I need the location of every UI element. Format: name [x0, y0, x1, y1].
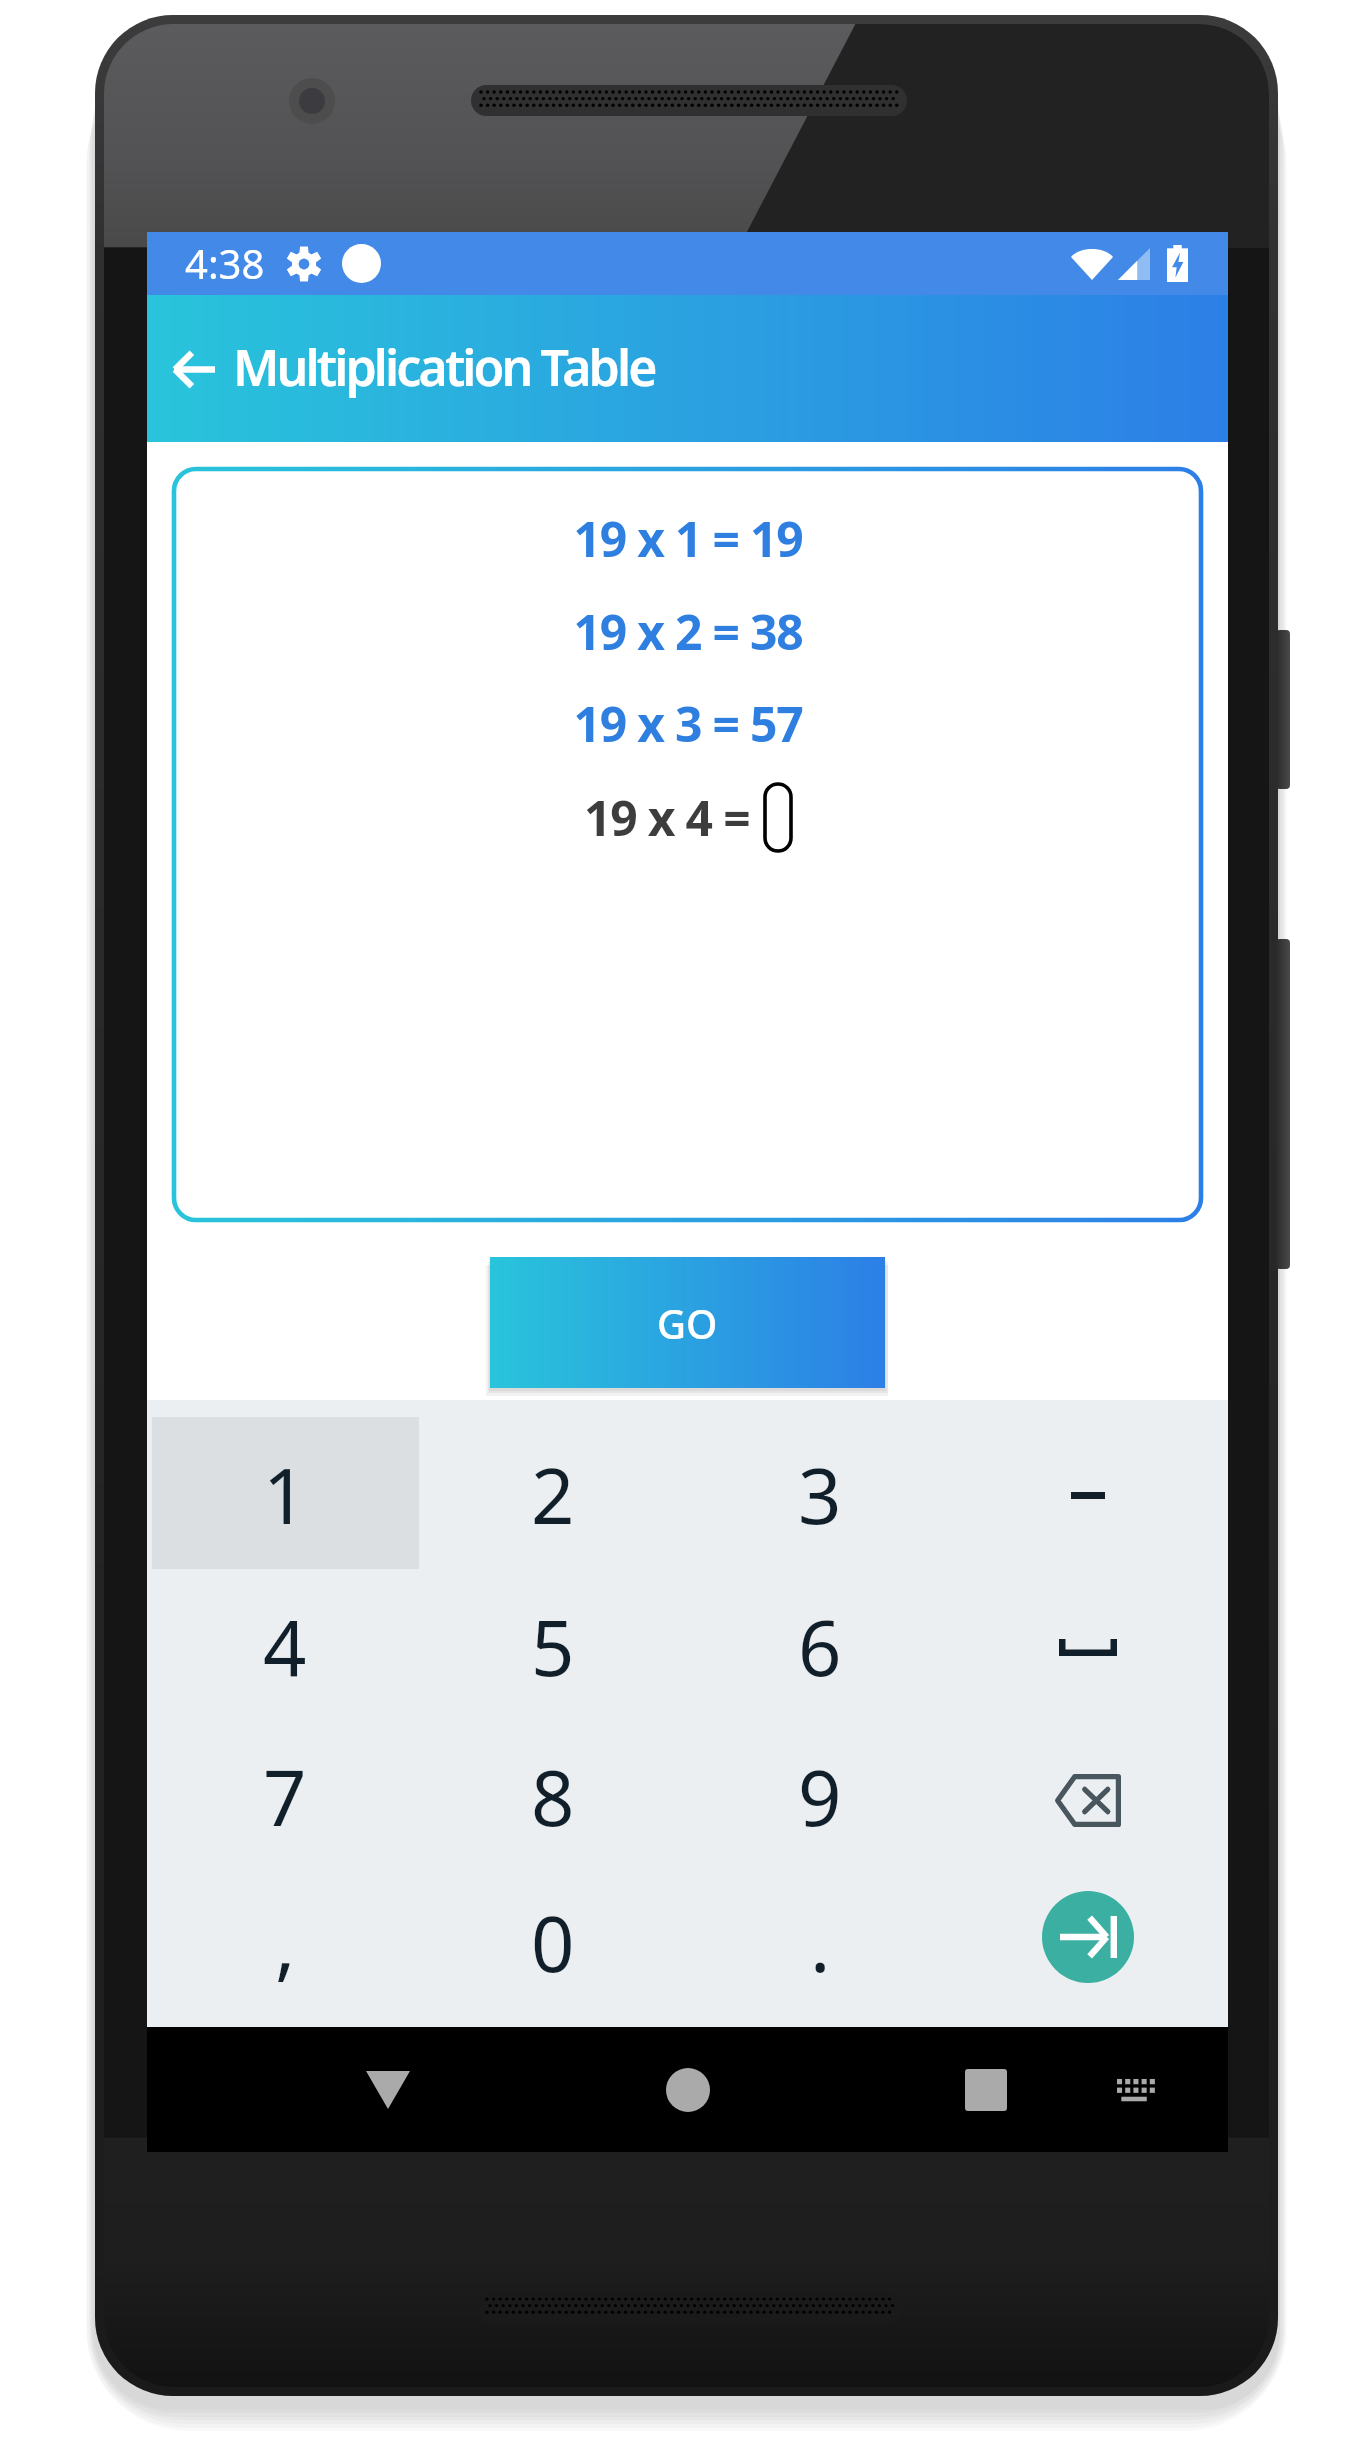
staticText: 2 [531, 1443, 575, 1547]
staticText: 7 [263, 1745, 307, 1849]
staticText: 19 x 3 = 57 [573, 691, 803, 756]
staticText: 4:38 [185, 236, 265, 290]
staticText: 6 [798, 1595, 842, 1699]
button[interactable]: Recents [931, 2027, 1041, 2152]
button[interactable]: Backspace [955, 1724, 1221, 1876]
staticText: Multiplication Table [233, 333, 655, 401]
button[interactable]: Home [633, 2027, 743, 2152]
button[interactable]: 4 [152, 1571, 418, 1723]
staticText: 4 [263, 1595, 307, 1699]
button[interactable]: Space [955, 1571, 1221, 1723]
staticText: 3 [798, 1443, 842, 1547]
button[interactable]: Minus [955, 1419, 1221, 1571]
button[interactable]: , [152, 1867, 418, 2019]
button[interactable]: Switch keyboard [1081, 2027, 1191, 2152]
staticText: 0 [531, 1891, 575, 1995]
staticText: GO [657, 1296, 718, 1350]
button[interactable]: 3 [687, 1419, 953, 1571]
staticText: 19 x 2 = 38 [573, 599, 803, 664]
button[interactable]: 8 [420, 1721, 686, 1873]
button[interactable]: . [687, 1867, 953, 2019]
staticText: 9 [798, 1745, 842, 1849]
button[interactable]: 6 [687, 1571, 953, 1723]
button[interactable]: 0 [420, 1867, 686, 2019]
staticText: 8 [531, 1745, 575, 1849]
button[interactable]: 2 [420, 1419, 686, 1571]
button[interactable]: 5 [420, 1571, 686, 1723]
staticText: . [810, 1891, 831, 1995]
button[interactable]: 7 [152, 1721, 418, 1873]
staticText: , [275, 1891, 296, 1995]
button[interactable]: GO [490, 1257, 885, 1388]
button[interactable]: 1 [152, 1419, 418, 1571]
button[interactable]: Back [333, 2027, 443, 2152]
staticText: 1 [263, 1443, 307, 1547]
staticText: 19 x 1 = 19 [573, 506, 803, 571]
staticText: 5 [531, 1595, 575, 1699]
button[interactable]: Back [150, 321, 238, 417]
button[interactable]: Answer input [584, 784, 791, 851]
button[interactable]: Enter [1042, 1891, 1134, 1983]
button[interactable]: 9 [687, 1721, 953, 1873]
staticText: 19 x 4 = [584, 785, 750, 850]
